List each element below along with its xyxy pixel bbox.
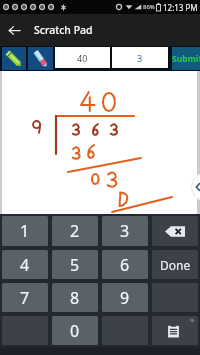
button[interactable]: 8 <box>52 283 98 312</box>
button[interactable]: 0 <box>52 316 98 345</box>
staticText: 1 <box>20 220 30 242</box>
staticText: 3 <box>120 220 130 242</box>
button[interactable]: Eraser <box>28 47 53 70</box>
button[interactable]: 2 <box>52 216 98 246</box>
staticText: 9 <box>120 287 130 309</box>
staticText: 40 <box>77 52 88 64</box>
button[interactable]: Submit <box>172 47 200 70</box>
button[interactable]: 5 <box>52 250 98 279</box>
staticText: 4 <box>20 254 30 276</box>
button[interactable]: 4 <box>2 250 48 279</box>
button[interactable]: Pen <box>2 47 26 70</box>
button[interactable]: Back <box>0 14 28 46</box>
staticText: Scratch Pad <box>34 23 93 37</box>
button[interactable]: 6 <box>102 250 148 279</box>
button[interactable]: 7 <box>2 283 48 312</box>
button[interactable]: Backspace <box>152 216 198 246</box>
staticText: 7 <box>20 287 30 309</box>
button[interactable]: 1 <box>2 216 48 246</box>
button[interactable]: 3 <box>102 216 148 246</box>
button[interactable]: Clipboard <box>152 316 198 345</box>
staticText: 2 <box>70 220 80 242</box>
staticText: 0 <box>70 320 80 342</box>
staticText: 6 <box>120 254 130 276</box>
button[interactable]: 3 <box>112 47 168 68</box>
staticText: Done <box>160 257 191 273</box>
button[interactable]: 40 <box>55 47 110 68</box>
button[interactable]: Previous page <box>191 173 200 201</box>
staticText: 5 <box>70 254 80 276</box>
staticText: 86% <box>143 3 155 11</box>
staticText: 3 <box>137 52 143 64</box>
staticText: Submit <box>172 53 200 65</box>
button[interactable]: Done <box>152 250 198 279</box>
staticText: 12:13 PM <box>163 2 198 13</box>
staticText: 8 <box>70 287 80 309</box>
button[interactable]: 9 <box>102 283 148 312</box>
